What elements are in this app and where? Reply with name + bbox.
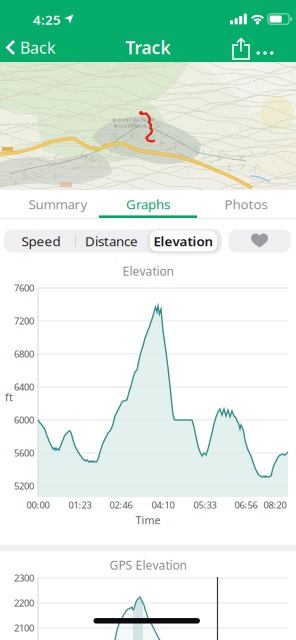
staticText: 05:33 [193,499,216,511]
staticText: 7600 [14,282,34,294]
button[interactable]: More [253,44,277,62]
staticText: 2100 [14,622,34,634]
staticText: Speed [21,232,60,250]
button[interactable]: Elevation [150,230,217,251]
staticText: 04:10 [151,499,174,511]
staticText: 08:20 [263,499,286,511]
staticText: Back [20,37,56,58]
staticText: 6000 [14,414,34,426]
staticText: Photos [224,195,267,213]
staticText: 00:00 [26,499,49,511]
staticText: 5200 [14,480,34,492]
staticText: 06:56 [234,499,257,511]
staticText: 7200 [14,315,34,327]
staticText: M O U N T R A I N I E R [112,117,153,123]
staticText: Elevation [122,263,173,279]
staticText: W I L D E R N E S S [114,123,146,129]
staticText: Summary [28,195,87,213]
button[interactable]: Speed [6,229,76,252]
staticText: GPS Elevation [109,557,186,573]
button[interactable]: Favorite [228,229,290,252]
staticText: 2200 [14,597,34,609]
button[interactable]: Summary [9,190,107,218]
staticText: 2300 [14,572,34,584]
staticText: ft [5,390,13,404]
button[interactable]: Distance [76,229,146,252]
staticText: Time [135,513,160,527]
staticText: 5600 [14,447,34,459]
staticText: Elevation [153,232,213,250]
button[interactable]: Share [230,37,252,61]
staticText: 6800 [14,348,34,360]
staticText: Distance [85,232,138,250]
staticText: 01:23 [68,499,91,511]
staticText: 6400 [14,381,34,393]
staticText: Track [125,36,170,59]
staticText: Graphs [126,195,170,213]
staticText: 02:46 [109,499,132,511]
button[interactable]: Graphs [99,190,197,218]
button[interactable]: Photos [197,190,295,218]
staticText: 4:25 [33,11,61,28]
button[interactable]: Back [1,34,61,60]
